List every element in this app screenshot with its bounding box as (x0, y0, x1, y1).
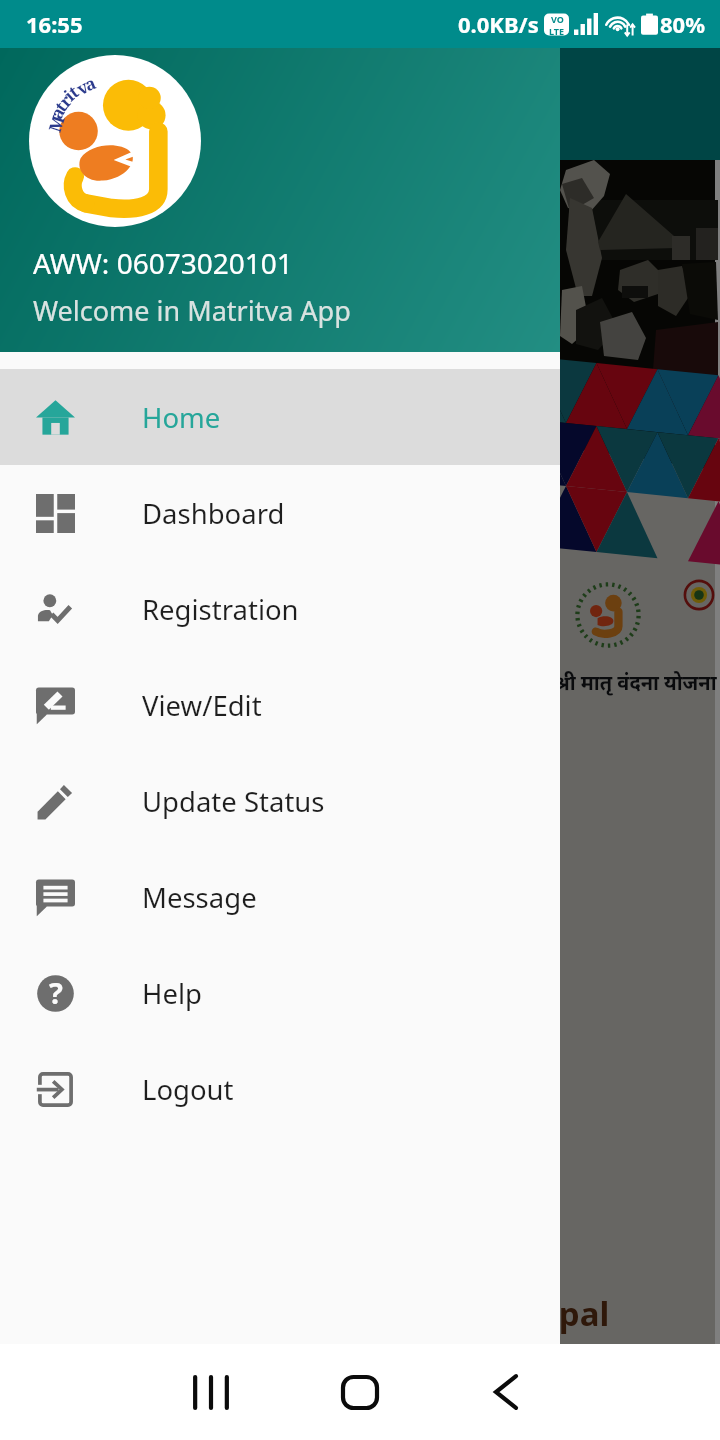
staticText: Message (142, 879, 257, 916)
staticText: श्री मातृ वंदना योजना (554, 669, 717, 696)
button[interactable]: ? (0, 945, 560, 1041)
staticText: i (59, 85, 79, 106)
button[interactable]: Registration (0, 561, 560, 657)
button[interactable]: Dashboard (0, 465, 560, 561)
staticText: Dashboard (142, 495, 285, 532)
staticText: 16:55 (26, 9, 83, 39)
staticText: Registration (142, 591, 299, 628)
staticText: t (64, 80, 83, 103)
button[interactable]: Back (465, 1352, 545, 1432)
button[interactable]: Recent apps (171, 1352, 251, 1432)
staticText: 0.0KB/s (458, 9, 539, 39)
button[interactable]: Home (0, 369, 560, 465)
staticText: t (49, 97, 72, 116)
staticText: Logout (142, 1071, 234, 1108)
staticText: M (43, 112, 70, 135)
staticText: LTE (549, 25, 565, 37)
staticText: Chaupal (475, 1291, 610, 1336)
staticText: AWW: 06073020101 (33, 244, 293, 282)
staticText: Help (142, 975, 202, 1012)
button[interactable]: Home (320, 1352, 400, 1432)
staticText: a (81, 71, 100, 96)
staticText: Home (142, 399, 221, 436)
button[interactable]: Logout (0, 1041, 560, 1137)
staticText: ? (49, 973, 63, 1012)
staticText: v (72, 75, 93, 100)
staticText: View/Edit (142, 687, 262, 724)
staticText: Welcome in Matritva App (33, 292, 351, 329)
staticText: a (45, 102, 70, 123)
button[interactable]: Message (0, 849, 560, 945)
staticText: 80% (660, 9, 706, 39)
button[interactable]: Update Status (0, 753, 560, 849)
button[interactable]: View/Edit (0, 657, 560, 753)
staticText: Update Status (142, 783, 325, 820)
staticText: VO (551, 13, 564, 25)
staticText: r (54, 89, 77, 111)
